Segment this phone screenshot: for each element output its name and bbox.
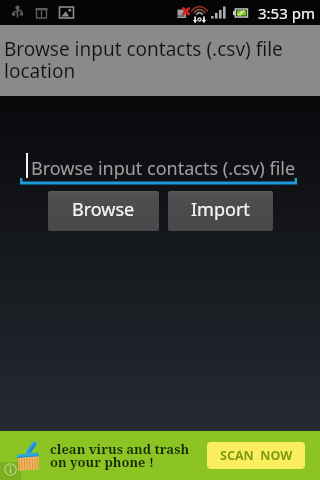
staticText: Browse input contacts (.csv) file: [31, 156, 296, 181]
staticText: SCAN NOW: [220, 447, 293, 464]
staticText: Browse input contacts (.csv) file locati…: [4, 36, 310, 84]
staticText: Browse: [72, 197, 135, 222]
staticText: Import: [191, 197, 250, 222]
staticText: 3:53 pm: [258, 3, 315, 23]
button[interactable]: Browse input contacts (.csv) file: [20, 151, 297, 188]
staticText: clean virus and trash on your phone !: [50, 440, 190, 471]
button[interactable]: Import: [168, 191, 273, 231]
button[interactable]: Ad info: [4, 463, 17, 476]
button[interactable]: SCAN NOW: [207, 442, 305, 469]
button[interactable]: Browse: [48, 191, 159, 231]
